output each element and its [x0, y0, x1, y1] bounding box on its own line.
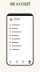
button[interactable]: Setting	[9, 34, 30, 37]
button[interactable]: Setting	[9, 44, 30, 47]
button[interactable]: Tab	[7, 59, 14, 64]
button[interactable]: Setting	[9, 37, 30, 40]
button[interactable]: Setting	[9, 41, 30, 44]
button[interactable]: Setting	[9, 27, 30, 30]
button[interactable]: Tab	[14, 59, 20, 64]
button[interactable]: Setting	[9, 48, 30, 51]
button[interactable]: Profile tab	[26, 59, 33, 64]
staticText: My Account	[10, 2, 30, 6]
button[interactable]: Tab	[20, 59, 26, 64]
button[interactable]: Setting	[9, 30, 30, 33]
button[interactable]: Setting	[9, 23, 30, 26]
